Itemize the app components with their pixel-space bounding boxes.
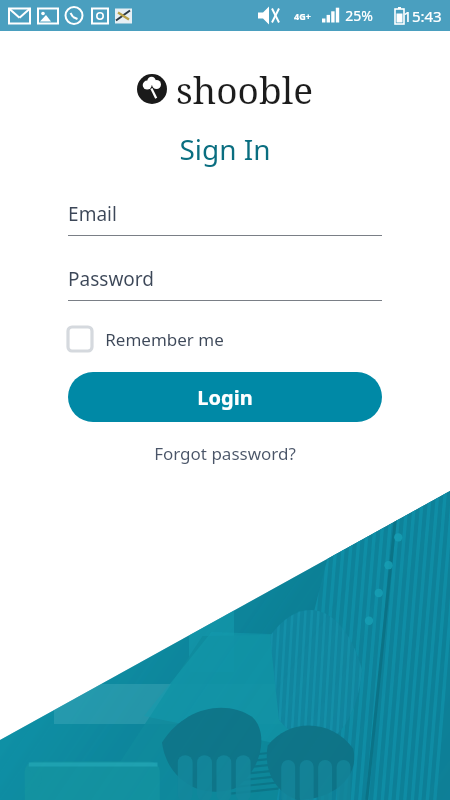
staticText: Remember me	[105, 328, 224, 351]
staticText: shooble	[176, 64, 313, 114]
staticText: Forgot password?	[154, 442, 296, 465]
button[interactable]: Forgot password?	[144, 438, 306, 469]
button[interactable]: Password	[68, 266, 382, 301]
staticText: 4G+	[294, 10, 311, 22]
staticText: 25%	[345, 6, 373, 25]
staticText: Password	[68, 266, 154, 292]
staticText: Login	[197, 384, 253, 411]
button[interactable]: Email	[68, 201, 382, 236]
other: Shooble logo	[137, 74, 167, 104]
button[interactable]: Login	[68, 372, 382, 422]
button[interactable]: Remember me	[66, 323, 226, 355]
staticText: Sign In	[179, 130, 271, 168]
staticText: 15:43	[403, 6, 442, 26]
staticText: Email	[68, 201, 117, 227]
